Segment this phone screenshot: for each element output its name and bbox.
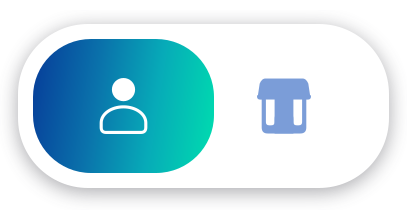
button[interactable]: Store: [236, 39, 332, 173]
button[interactable]: Profile: [33, 39, 214, 173]
